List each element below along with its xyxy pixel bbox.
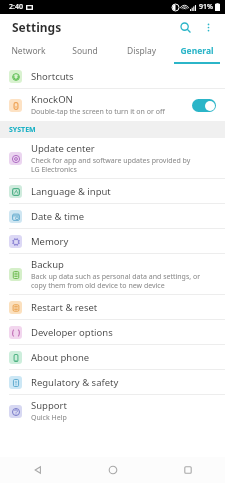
staticText: Display (127, 45, 156, 57)
staticText: Restart & reset (31, 301, 98, 314)
button[interactable]: Update center (0, 138, 225, 178)
button[interactable]: Network (0, 40, 57, 62)
staticText: Backup (31, 258, 64, 271)
button[interactable]: Date & time (0, 204, 225, 228)
staticText: Double-tap the screen to turn it on or o… (31, 107, 165, 117)
staticText: Settings (12, 19, 62, 35)
staticText: 2:40 (9, 2, 23, 12)
staticText: Back up data such as personal data and s… (31, 272, 201, 290)
button[interactable]: Memory (0, 229, 225, 253)
button[interactable]: General (169, 40, 225, 62)
staticText: Shortcuts (31, 70, 74, 83)
staticText: KnockON (31, 93, 73, 106)
button[interactable]: About phone (0, 345, 225, 369)
button[interactable]: Sound (57, 40, 113, 62)
staticText: Regulatory & safety (31, 376, 119, 389)
staticText: Language & input (31, 185, 111, 198)
staticText: Developer options (31, 326, 113, 339)
button[interactable]: Developer options (0, 320, 225, 344)
button[interactable]: Language & input (0, 179, 225, 203)
staticText: Sound (72, 45, 98, 57)
button[interactable]: Support (0, 395, 225, 427)
staticText: About phone (31, 351, 90, 364)
staticText: Update center (31, 142, 95, 155)
button[interactable]: KnockON toggle (192, 99, 216, 112)
button[interactable]: Regulatory & safety (0, 370, 225, 394)
staticText: Check for app and software updates provi… (31, 156, 191, 174)
button[interactable]: Back (0, 457, 75, 483)
button[interactable]: Recent apps (150, 457, 225, 483)
staticText: SYSTEM (9, 125, 36, 135)
button[interactable]: Shortcuts (0, 64, 225, 88)
button[interactable]: Home (75, 457, 150, 483)
button[interactable]: Search (173, 15, 197, 39)
button[interactable]: Display (113, 40, 169, 62)
staticText: Memory (31, 235, 69, 248)
staticText: 91% (199, 2, 213, 12)
button[interactable]: Backup (0, 254, 225, 294)
button[interactable]: KnockON (0, 89, 225, 121)
staticText: Date & time (31, 210, 85, 223)
button[interactable]: More options (197, 16, 219, 38)
staticText: General (180, 45, 214, 57)
staticText: Network (11, 45, 46, 57)
staticText: Support (31, 399, 67, 412)
button[interactable]: Restart & reset (0, 295, 225, 319)
staticText: Quick Help (31, 413, 67, 423)
